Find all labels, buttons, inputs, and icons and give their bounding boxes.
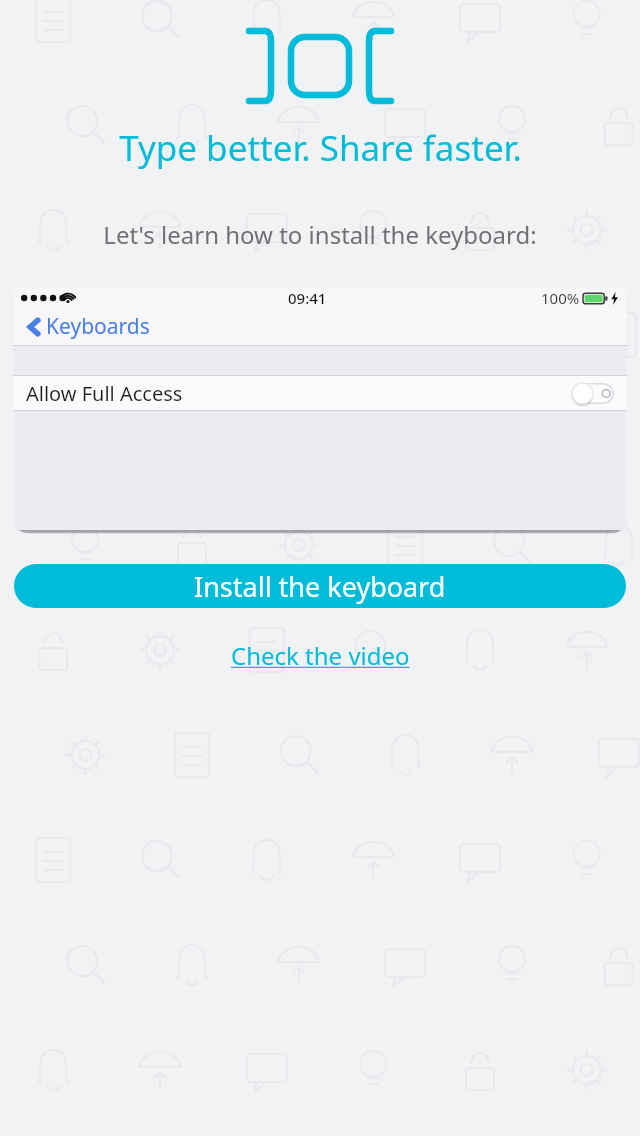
staticText: Check the video bbox=[231, 639, 410, 672]
button[interactable]: Allow Full Access toggle, off bbox=[571, 381, 614, 406]
button[interactable]: Install the keyboard bbox=[14, 564, 626, 608]
staticText: Let's learn how to install the keyboard: bbox=[103, 218, 537, 251]
button[interactable]: Allow Full Access bbox=[13, 376, 627, 410]
staticText: 100% bbox=[541, 288, 580, 308]
button[interactable]: Check the video bbox=[219, 635, 422, 676]
staticText: 09:41 bbox=[288, 288, 327, 308]
staticText: Type better. Share faster. bbox=[119, 124, 522, 172]
staticText: Keyboards bbox=[46, 312, 150, 341]
staticText: Allow Full Access bbox=[26, 380, 183, 407]
button[interactable]: Keyboards bbox=[13, 308, 627, 345]
staticText: Install the keyboard bbox=[194, 568, 446, 605]
